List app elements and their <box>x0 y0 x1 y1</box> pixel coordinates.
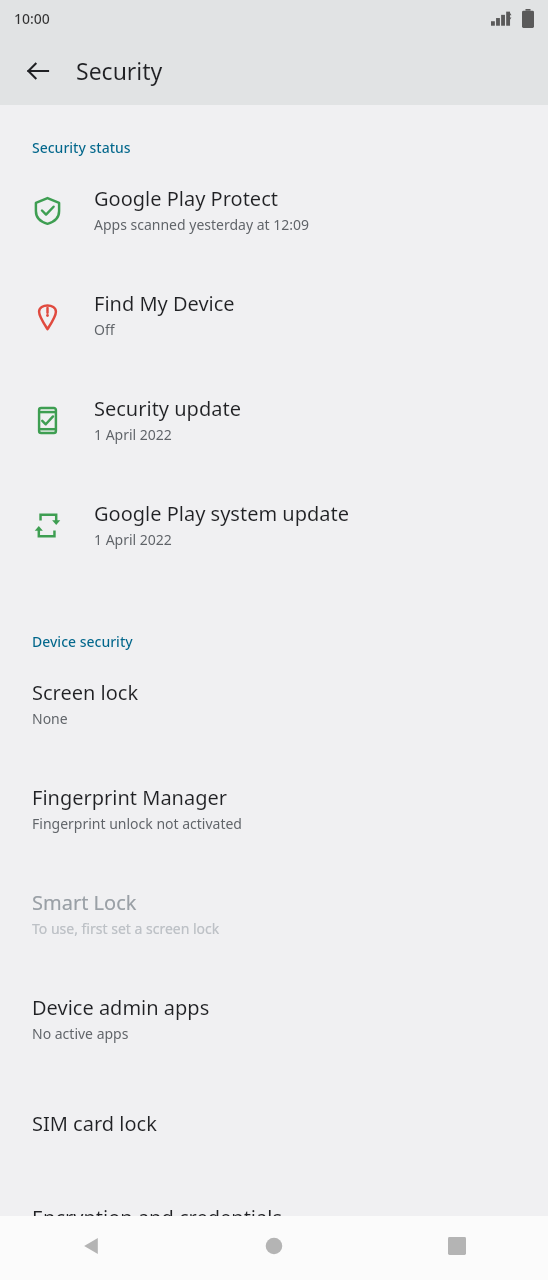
button[interactable]: Back <box>14 47 62 95</box>
staticText: Find My Device <box>94 290 235 317</box>
button[interactable]: Screen lock <box>0 651 548 756</box>
staticText: Security update <box>94 395 241 422</box>
button[interactable]: Google Play system update <box>0 472 548 577</box>
staticText: Encryption and credentials <box>32 1204 282 1231</box>
staticText: Fingerprint unlock not activated <box>32 814 242 833</box>
button[interactable]: Device admin apps <box>0 966 548 1071</box>
button[interactable]: Encryption and credentials <box>0 1176 548 1280</box>
staticText: To use, first set a screen lock <box>32 919 220 938</box>
button[interactable]: Security update <box>0 367 548 472</box>
staticText: Google Play Protect <box>94 185 278 212</box>
button[interactable]: Back <box>0 1216 182 1280</box>
button[interactable]: Fingerprint Manager <box>0 756 548 861</box>
staticText: 1 April 2022 <box>94 530 172 549</box>
button[interactable]: Smart Lock <box>0 861 548 966</box>
staticText: Security status <box>32 138 131 157</box>
staticText: Screen lock <box>32 679 139 706</box>
staticText: Google Play system update <box>94 500 350 527</box>
staticText: Fingerprint Manager <box>32 784 228 811</box>
button[interactable]: Find My Device <box>0 262 548 367</box>
staticText: Apps scanned yesterday at 12:09 <box>94 215 310 234</box>
button[interactable]: SIM card lock <box>0 1071 548 1176</box>
staticText: Smart Lock <box>32 889 137 916</box>
staticText: 1 April 2022 <box>94 425 172 444</box>
staticText: None <box>32 709 68 728</box>
button[interactable]: Home <box>182 1216 365 1280</box>
staticText: Device security <box>32 632 133 651</box>
staticText: Security <box>76 55 163 86</box>
staticText: 10:00 <box>14 9 50 28</box>
staticText: SIM card lock <box>32 1110 157 1137</box>
button[interactable]: Google Play Protect <box>0 157 548 262</box>
button[interactable]: Recent apps <box>365 1216 548 1280</box>
staticText: Encrypted <box>32 1234 99 1253</box>
staticText: No active apps <box>32 1024 129 1043</box>
staticText: Off <box>94 320 115 339</box>
staticText: Device admin apps <box>32 994 210 1021</box>
